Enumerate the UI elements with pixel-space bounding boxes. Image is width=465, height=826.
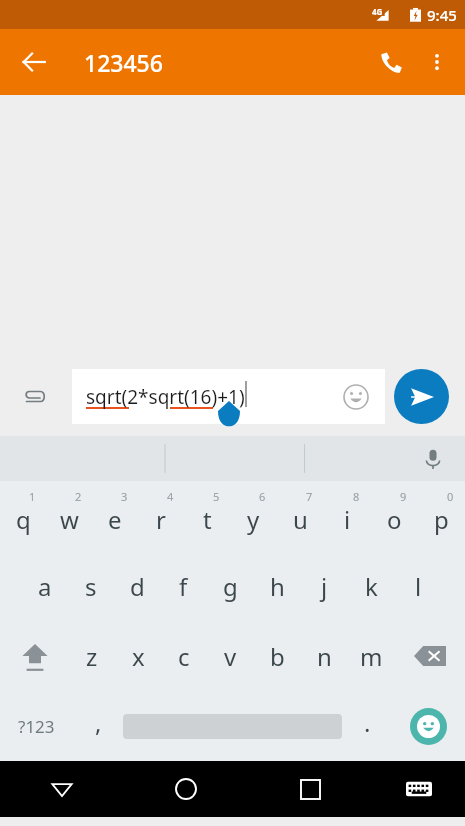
button[interactable]: a [22,551,68,621]
button[interactable]: Shift [0,621,69,691]
staticText: g [223,570,238,603]
button[interactable]: Call [367,38,415,86]
button[interactable]: . [342,691,392,761]
button[interactable]: 8 [324,481,371,551]
staticText: u [293,503,308,536]
staticText: . [364,706,371,739]
staticText: 5 [213,489,220,504]
staticText: f [179,570,188,603]
staticText: z [86,640,98,673]
staticText: x [132,640,145,673]
staticText: h [270,570,285,603]
staticText: e [108,503,122,536]
staticText: a [38,570,52,603]
staticText: k [365,570,378,603]
button[interactable]: x [115,621,161,691]
staticText: l [415,570,422,603]
button[interactable]: , [73,691,123,761]
staticText: 123456 [84,47,163,78]
button[interactable]: d [114,551,160,621]
button[interactable]: 1 [0,481,46,551]
button[interactable]: Recent apps [248,761,372,817]
staticText: s [85,570,97,603]
button[interactable]: Back [10,38,58,86]
staticText: 0 [447,489,454,504]
button[interactable]: More options [415,40,459,84]
staticText: m [360,640,383,673]
staticText: j [321,570,328,603]
button[interactable]: 2 [46,481,92,551]
staticText: q [16,503,31,536]
button[interactable]: Attach [12,374,56,418]
staticText: 2 [75,489,82,504]
button[interactable]: Insert emoji [339,380,373,414]
staticText: ?123 [18,715,55,738]
button[interactable]: Home [124,761,248,817]
staticText: t [203,503,212,536]
button[interactable]: 7 [277,481,324,551]
button[interactable]: b [254,621,301,691]
button[interactable]: m [348,621,395,691]
button[interactable]: j [301,551,348,621]
staticText: 3 [121,489,128,504]
button[interactable]: ?123 [0,691,73,761]
staticText: i [344,503,351,536]
staticText: y [247,503,260,536]
button[interactable]: Voice input [413,439,453,479]
button[interactable]: s [68,551,114,621]
staticText: d [130,570,145,603]
staticText: 4 [167,489,174,504]
staticText: 9:45 [427,5,457,25]
button[interactable]: 3 [92,481,138,551]
button[interactable]: 9 [371,481,418,551]
staticText: 6 [259,489,266,504]
staticText: b [270,640,285,673]
button[interactable]: g [207,551,254,621]
staticText: p [434,503,449,536]
button[interactable]: v [207,621,254,691]
button[interactable]: sqrt(2*sqrt(16)+1) [72,369,385,424]
button[interactable]: 0 [418,481,465,551]
staticText: 4G [372,6,383,17]
button[interactable]: l [395,551,442,621]
button[interactable]: 4 [138,481,184,551]
staticText: , [95,706,102,739]
staticText: c [178,640,190,673]
button[interactable]: Send [394,369,449,424]
staticText: sqrt(2*sqrt(16)+1) [86,384,245,410]
staticText: n [317,640,332,673]
staticText: r [156,503,166,536]
button[interactable]: f [160,551,207,621]
staticText: 9 [400,489,407,504]
button[interactable]: 6 [230,481,277,551]
button[interactable]: Emoji keyboard [392,691,465,761]
button[interactable]: z [69,621,115,691]
staticText: v [224,640,237,673]
button[interactable]: h [254,551,301,621]
button[interactable]: Switch keyboard [372,761,465,817]
staticText: 8 [353,489,360,504]
button[interactable]: Space [123,691,342,761]
staticText: 7 [306,489,313,504]
button[interactable]: 5 [184,481,230,551]
button[interactable]: k [348,551,395,621]
button[interactable]: c [161,621,207,691]
staticText: 1 [29,489,36,504]
staticText: o [387,503,402,536]
button[interactable]: n [301,621,348,691]
staticText: w [60,503,79,536]
button[interactable]: Hide keyboard [0,761,124,817]
button[interactable]: Backspace [395,621,465,691]
